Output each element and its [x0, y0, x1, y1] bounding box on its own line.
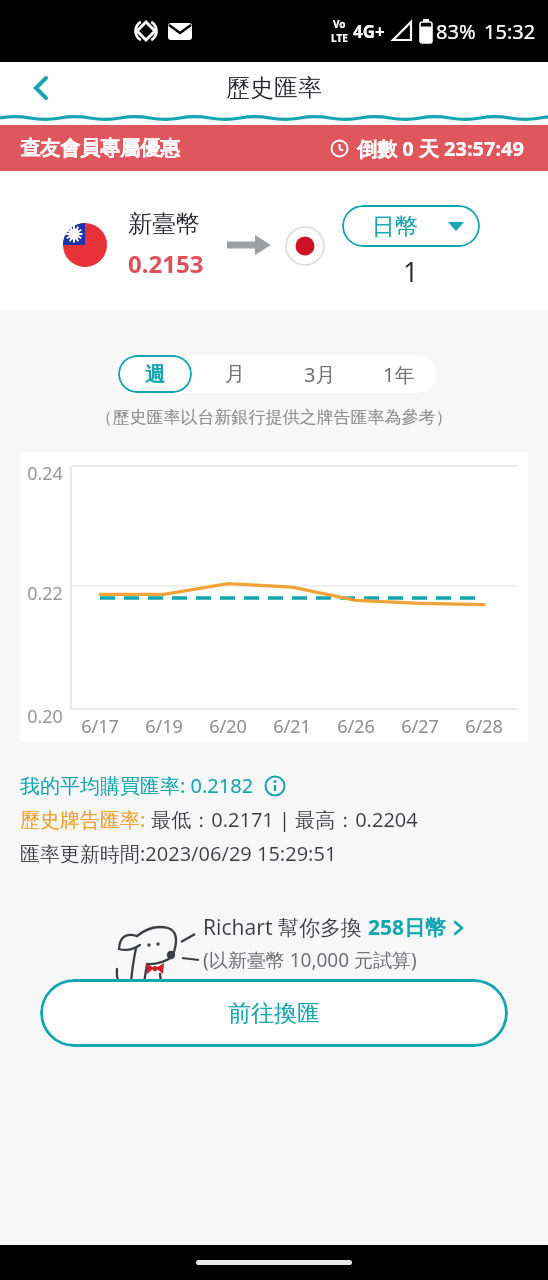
staticText: 4G+: [353, 20, 385, 43]
staticText: 前往換匯: [228, 999, 320, 1028]
staticText: Vo: [333, 17, 346, 31]
staticText: 0.20: [25, 704, 65, 729]
staticText: 月: [225, 362, 245, 387]
staticText: 3月: [304, 361, 336, 388]
staticText: 6/27: [392, 714, 448, 739]
staticText: 6/20: [200, 714, 256, 739]
staticText: 1: [403, 253, 419, 290]
button[interactable]: 日幣: [342, 205, 480, 247]
staticText: （歷史匯率以台新銀行提供之牌告匯率為參考）: [0, 407, 548, 428]
staticText: 0.22: [25, 581, 65, 606]
staticText: 匯率更新時間:2023/06/29 15:29:51: [20, 840, 337, 867]
staticText: 6/21: [264, 714, 320, 739]
staticText: 倒數 0 天 23:57:49: [357, 135, 524, 162]
button[interactable]: 前往換匯: [40, 979, 508, 1047]
button[interactable]: 查友會員專屬優惠: [0, 125, 548, 171]
staticText: 15:32: [484, 18, 536, 45]
staticText: 6/17: [72, 714, 128, 739]
button[interactable]: 我的平均購買匯率: 0.2182: [20, 772, 286, 799]
staticText: 0.2153: [128, 247, 204, 280]
staticText: LTE: [331, 31, 348, 45]
staticText: 0.24: [25, 461, 65, 486]
staticText: 新臺幣: [128, 209, 200, 239]
button[interactable]: 月: [192, 355, 278, 393]
staticText: Richart 幫你多換: [203, 913, 368, 942]
button[interactable]: 3月: [278, 355, 362, 393]
staticText: 歷史匯率: [226, 73, 322, 103]
staticText: 我的平均購買匯率: 0.2182: [20, 772, 254, 799]
staticText: 258日幣: [368, 913, 447, 942]
staticText: 6/26: [328, 714, 384, 739]
staticText: 1年: [383, 361, 415, 388]
staticText: 6/19: [136, 714, 192, 739]
staticText: 6/28: [456, 714, 512, 739]
button[interactable]: Richart 幫你多換: [203, 913, 465, 973]
staticText: 查友會員專屬優惠: [20, 136, 180, 161]
button[interactable]: [24, 70, 60, 106]
staticText: 最低：0.2171 | 最高：0.2204: [146, 806, 418, 833]
staticText: (以新臺幣 10,000 元試算): [203, 947, 417, 973]
staticText: 日幣: [372, 212, 418, 241]
button[interactable]: 1年: [362, 355, 436, 393]
staticText: 83%: [436, 18, 476, 45]
staticText: 歷史牌告匯率:: [20, 806, 146, 833]
staticText: 週: [145, 362, 165, 387]
button[interactable]: 週: [118, 355, 192, 393]
